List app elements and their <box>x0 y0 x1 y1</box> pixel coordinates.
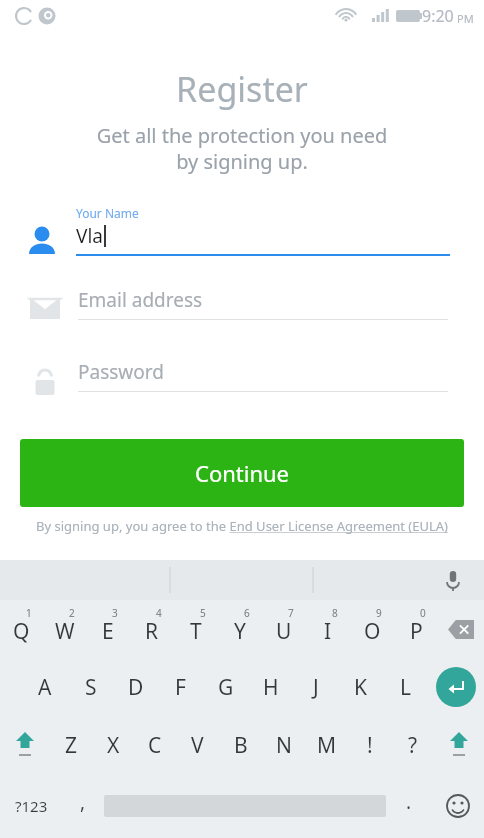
button[interactable]: Password <box>0 359 484 409</box>
button[interactable]: , <box>62 774 104 838</box>
staticText: T <box>190 617 202 646</box>
staticText: ?123 <box>15 796 48 816</box>
button[interactable]: 3 <box>86 600 130 658</box>
staticText: K <box>354 673 367 702</box>
button[interactable]: X <box>92 716 134 774</box>
button[interactable]: G <box>203 658 248 716</box>
button[interactable]: Voice input <box>436 563 470 597</box>
staticText: Register <box>0 66 484 112</box>
button[interactable]: 1 <box>0 600 43 658</box>
button[interactable]: 4 <box>130 600 174 658</box>
button[interactable]: Shift <box>0 716 50 774</box>
staticText: 9:20 <box>422 5 454 27</box>
staticText: M <box>317 731 337 760</box>
staticText: Your Name <box>76 205 139 221</box>
button[interactable]: 7 <box>262 600 306 658</box>
button[interactable]: N <box>262 716 305 774</box>
button[interactable]: 5 <box>174 600 218 658</box>
button[interactable]: C <box>134 716 176 774</box>
staticText: PM <box>457 11 474 26</box>
staticText: 2 <box>69 606 75 620</box>
button[interactable]: Continue <box>20 439 464 507</box>
button[interactable]: F <box>158 658 203 716</box>
button[interactable]: 8 <box>306 600 350 658</box>
staticText: 6 <box>244 606 250 620</box>
button[interactable]: 2 <box>43 600 86 658</box>
button[interactable]: ! <box>348 716 391 774</box>
staticText: W <box>55 617 75 646</box>
button[interactable]: . <box>386 774 432 838</box>
staticText: 5 <box>200 606 206 620</box>
staticText: B <box>234 731 248 760</box>
staticText: O <box>364 617 381 646</box>
button[interactable]: K <box>338 658 383 716</box>
staticText: Y <box>234 617 246 646</box>
staticText: N <box>276 731 292 760</box>
staticText: Vla <box>76 223 103 249</box>
staticText: S <box>85 673 97 702</box>
button[interactable]: 9 <box>350 600 394 658</box>
staticText: 7 <box>288 606 294 620</box>
button[interactable]: S <box>68 658 113 716</box>
staticText: P <box>410 617 423 646</box>
staticText: X <box>107 731 120 760</box>
staticText: ! <box>367 731 373 760</box>
staticText: U <box>276 617 292 646</box>
button[interactable]: Backspace <box>438 600 484 658</box>
button[interactable]: H <box>248 658 293 716</box>
button[interactable]: B <box>219 716 262 774</box>
button[interactable]: Email address <box>0 287 484 337</box>
staticText: H <box>263 673 279 702</box>
staticText: J <box>313 673 319 702</box>
staticText: G <box>218 673 234 702</box>
staticText: 8 <box>332 606 338 620</box>
staticText: 1 <box>26 606 32 620</box>
staticText: D <box>128 673 144 702</box>
staticText: Continue <box>195 458 290 488</box>
staticText: L <box>400 673 412 702</box>
staticText: E <box>102 617 114 646</box>
staticText: V <box>191 731 204 760</box>
staticText: . <box>406 789 412 815</box>
staticText: R <box>145 617 159 646</box>
staticText: Get all the protection you need by signi… <box>20 122 464 175</box>
staticText: Q <box>13 617 30 646</box>
button[interactable]: ? <box>391 716 434 774</box>
button[interactable]: L <box>383 658 428 716</box>
staticText: , <box>80 789 86 815</box>
staticText: Email address <box>78 287 203 313</box>
staticText: 4 <box>156 606 162 620</box>
staticText: A <box>38 673 52 702</box>
button[interactable]: Enter <box>428 658 484 716</box>
button[interactable]: A <box>22 658 68 716</box>
staticText: I <box>324 617 332 646</box>
staticText: Z <box>65 731 78 760</box>
staticText: 0 <box>420 606 426 620</box>
staticText: 3 <box>112 606 118 620</box>
button[interactable]: D <box>113 658 158 716</box>
staticText: ? <box>408 731 418 760</box>
button[interactable]: Shift <box>434 716 484 774</box>
button[interactable]: J <box>293 658 338 716</box>
button[interactable]: 6 <box>218 600 262 658</box>
button[interactable]: Emoji <box>432 774 484 838</box>
button[interactable]: By signing up, you agree to the End User… <box>12 517 472 535</box>
button[interactable]: ?123 <box>0 774 62 838</box>
staticText: 9 <box>376 606 382 620</box>
button[interactable]: V <box>176 716 219 774</box>
button[interactable]: Your Name <box>0 205 484 267</box>
button[interactable]: 0 <box>394 600 438 658</box>
staticText: Password <box>78 359 164 385</box>
button[interactable]: M <box>305 716 348 774</box>
staticText: F <box>175 673 186 702</box>
staticText: C <box>148 731 162 760</box>
button[interactable]: Z <box>50 716 92 774</box>
